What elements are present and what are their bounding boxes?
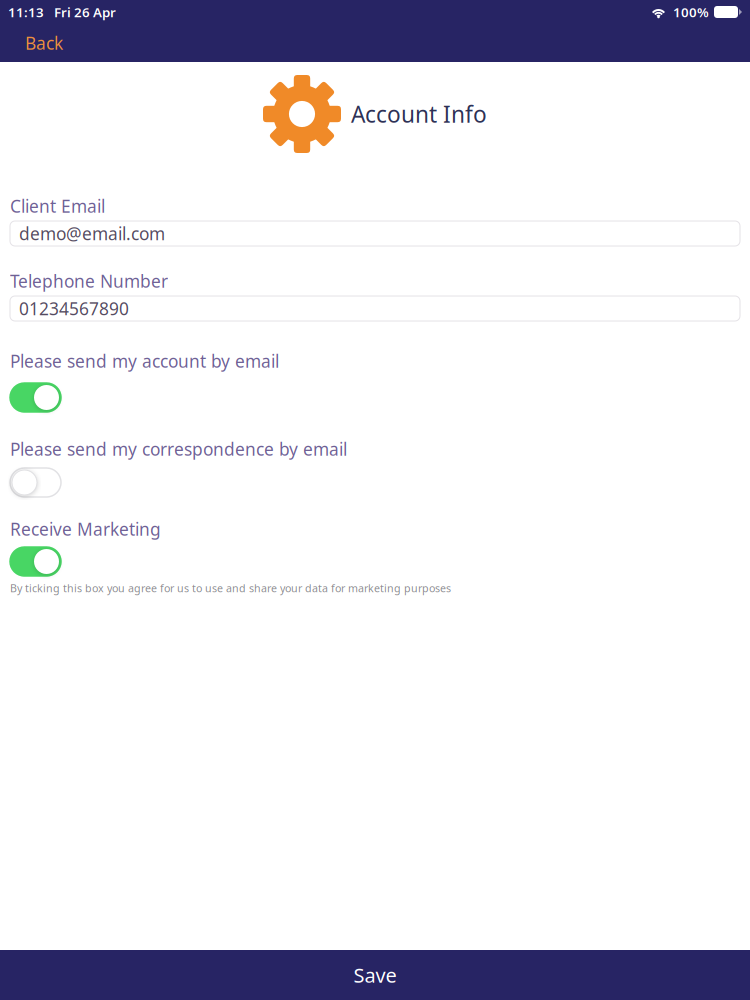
staticText: 100% xyxy=(673,3,709,21)
button[interactable]: Send my correspondence by email xyxy=(10,458,61,497)
button[interactable]: Back xyxy=(0,22,79,63)
staticText: Fri 26 Apr xyxy=(54,3,116,21)
staticText: Please send my account by email xyxy=(10,349,279,372)
staticText: 11:13 xyxy=(8,3,44,21)
button[interactable]: Send my account by email xyxy=(10,370,61,412)
staticText: Back xyxy=(25,31,63,54)
staticText: 01234567890 xyxy=(19,297,129,320)
staticText: Account Info xyxy=(351,99,487,129)
staticText: By ticking this box you agree for us to … xyxy=(10,581,451,595)
button[interactable]: Receive marketing xyxy=(10,538,61,576)
staticText: Save xyxy=(353,962,396,988)
staticText: Receive Marketing xyxy=(10,517,161,540)
staticText: Please send my correspondence by email xyxy=(10,437,347,460)
staticText: demo@email.com xyxy=(19,222,165,245)
staticText: Telephone Number xyxy=(10,269,168,292)
staticText: Client Email xyxy=(10,194,105,217)
button[interactable]: Save xyxy=(0,950,750,1000)
